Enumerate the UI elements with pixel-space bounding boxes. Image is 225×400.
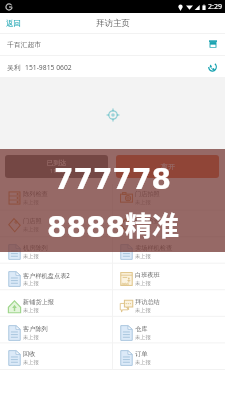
staticText: 未上报 bbox=[23, 334, 39, 341]
button[interactable]: 价格检查 bbox=[112, 211, 225, 238]
staticText: 11:09 bbox=[50, 167, 65, 174]
staticText: 精准 bbox=[125, 205, 179, 244]
button[interactable]: 订单 bbox=[112, 346, 225, 370]
button[interactable]: 返回 bbox=[0, 14, 31, 33]
staticText: 已到达 bbox=[47, 159, 67, 167]
button[interactable]: 拜访总结 bbox=[112, 292, 225, 319]
staticText: 未上报 bbox=[23, 307, 39, 314]
button[interactable]: 机房陈列 bbox=[0, 238, 112, 265]
button[interactable]: 门店照 bbox=[0, 211, 112, 238]
button[interactable]: 门店拍照 bbox=[112, 184, 225, 211]
button[interactable]: 客户样机盘点表2 bbox=[0, 265, 112, 292]
staticText: 未上报 bbox=[135, 280, 151, 287]
button[interactable]: 新铺货上报 bbox=[0, 292, 112, 319]
staticText: 未上报 bbox=[135, 334, 151, 341]
staticText: 未上报 bbox=[135, 307, 151, 314]
staticText: 白班夜班 bbox=[135, 271, 160, 279]
other: Store bbox=[209, 40, 217, 48]
staticText: 卖场样机检查 bbox=[135, 244, 173, 252]
staticText: 门店照 bbox=[23, 217, 42, 225]
staticText: 仓库 bbox=[135, 325, 148, 333]
staticText: 客户陈列 bbox=[23, 325, 48, 333]
staticText: 未上报 bbox=[23, 253, 39, 260]
button[interactable]: 回收 bbox=[0, 346, 112, 370]
staticText: 未上报 bbox=[135, 359, 151, 366]
button[interactable]: 陈列检查 bbox=[0, 184, 112, 211]
staticText: 客户样机盘点表2 bbox=[23, 271, 70, 279]
staticText: 2:29 bbox=[208, 2, 222, 12]
button[interactable]: 吴利 bbox=[0, 56, 225, 78]
staticText: 未上报 bbox=[135, 253, 151, 260]
button[interactable]: 已到达 bbox=[5, 155, 108, 178]
staticText: 未上报 bbox=[135, 199, 151, 206]
staticText: 未上报 bbox=[23, 359, 39, 366]
staticText: 吴利 bbox=[7, 63, 21, 72]
staticText: 777778 bbox=[54, 163, 171, 196]
staticText: 拜访总结 bbox=[135, 298, 160, 306]
other: Call bbox=[208, 62, 217, 72]
staticText: 未上报 bbox=[23, 280, 39, 287]
button[interactable]: 离开 bbox=[116, 155, 219, 178]
button[interactable]: 白班夜班 bbox=[112, 265, 225, 292]
button[interactable]: 千百汇超市 bbox=[0, 33, 225, 55]
staticText: 订单 bbox=[135, 350, 148, 358]
staticText: 离开 bbox=[161, 162, 175, 171]
staticText: 新铺货上报 bbox=[23, 298, 54, 306]
button[interactable]: 卖场样机检查 bbox=[112, 238, 225, 265]
staticText: 8888 bbox=[47, 211, 125, 244]
staticText: 未上报 bbox=[23, 226, 39, 233]
staticText: 门店拍照 bbox=[135, 190, 160, 198]
button[interactable]: 客户陈列 bbox=[0, 319, 112, 346]
staticText: 未上报 bbox=[135, 226, 151, 233]
staticText: 未上报 bbox=[23, 199, 39, 206]
button[interactable]: 仓库 bbox=[112, 319, 225, 346]
staticText: 返回 bbox=[6, 19, 21, 28]
staticText: 价格检查 bbox=[135, 217, 160, 225]
staticText: 151-9815 0602 bbox=[25, 63, 72, 72]
staticText: 陈列检查 bbox=[23, 190, 48, 198]
staticText: 拜访主页 bbox=[96, 18, 130, 29]
staticText: 机房陈列 bbox=[23, 244, 48, 252]
staticText: 千百汇超市 bbox=[7, 40, 41, 49]
staticText: 回收 bbox=[23, 350, 36, 358]
